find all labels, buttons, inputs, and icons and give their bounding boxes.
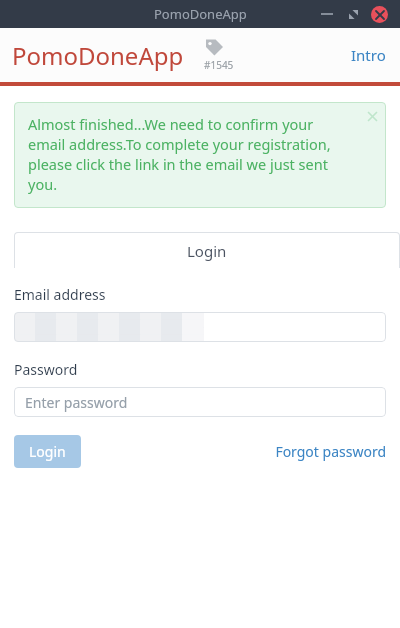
- staticText: Email address: [14, 285, 106, 304]
- staticText: Intro: [351, 45, 386, 65]
- button[interactable]: Enter password: [14, 387, 386, 417]
- staticText: Password: [14, 360, 78, 379]
- staticText: Login: [187, 241, 227, 261]
- button[interactable]: Intro: [351, 45, 386, 65]
- button[interactable]: [14, 312, 386, 342]
- staticText: #1545: [204, 58, 234, 72]
- button[interactable]: PomoDoneApp: [12, 39, 184, 72]
- other: Version tag: [204, 37, 224, 57]
- staticText: Login: [29, 442, 66, 461]
- button[interactable]: Login: [14, 232, 400, 269]
- button[interactable]: Login: [14, 435, 81, 468]
- staticText: Almost finished...We need to confirm you…: [28, 114, 346, 194]
- staticText: Forgot password: [275, 442, 386, 461]
- staticText: Enter password: [25, 393, 128, 412]
- staticText: PomoDoneApp: [12, 39, 184, 72]
- button[interactable]: Forgot password: [275, 442, 386, 461]
- button[interactable]: Minimize: [314, 1, 340, 27]
- button[interactable]: Dismiss: [358, 102, 386, 130]
- button[interactable]: Close: [366, 1, 392, 27]
- staticText: PomoDoneApp: [154, 5, 247, 23]
- button[interactable]: Maximize: [340, 1, 366, 27]
